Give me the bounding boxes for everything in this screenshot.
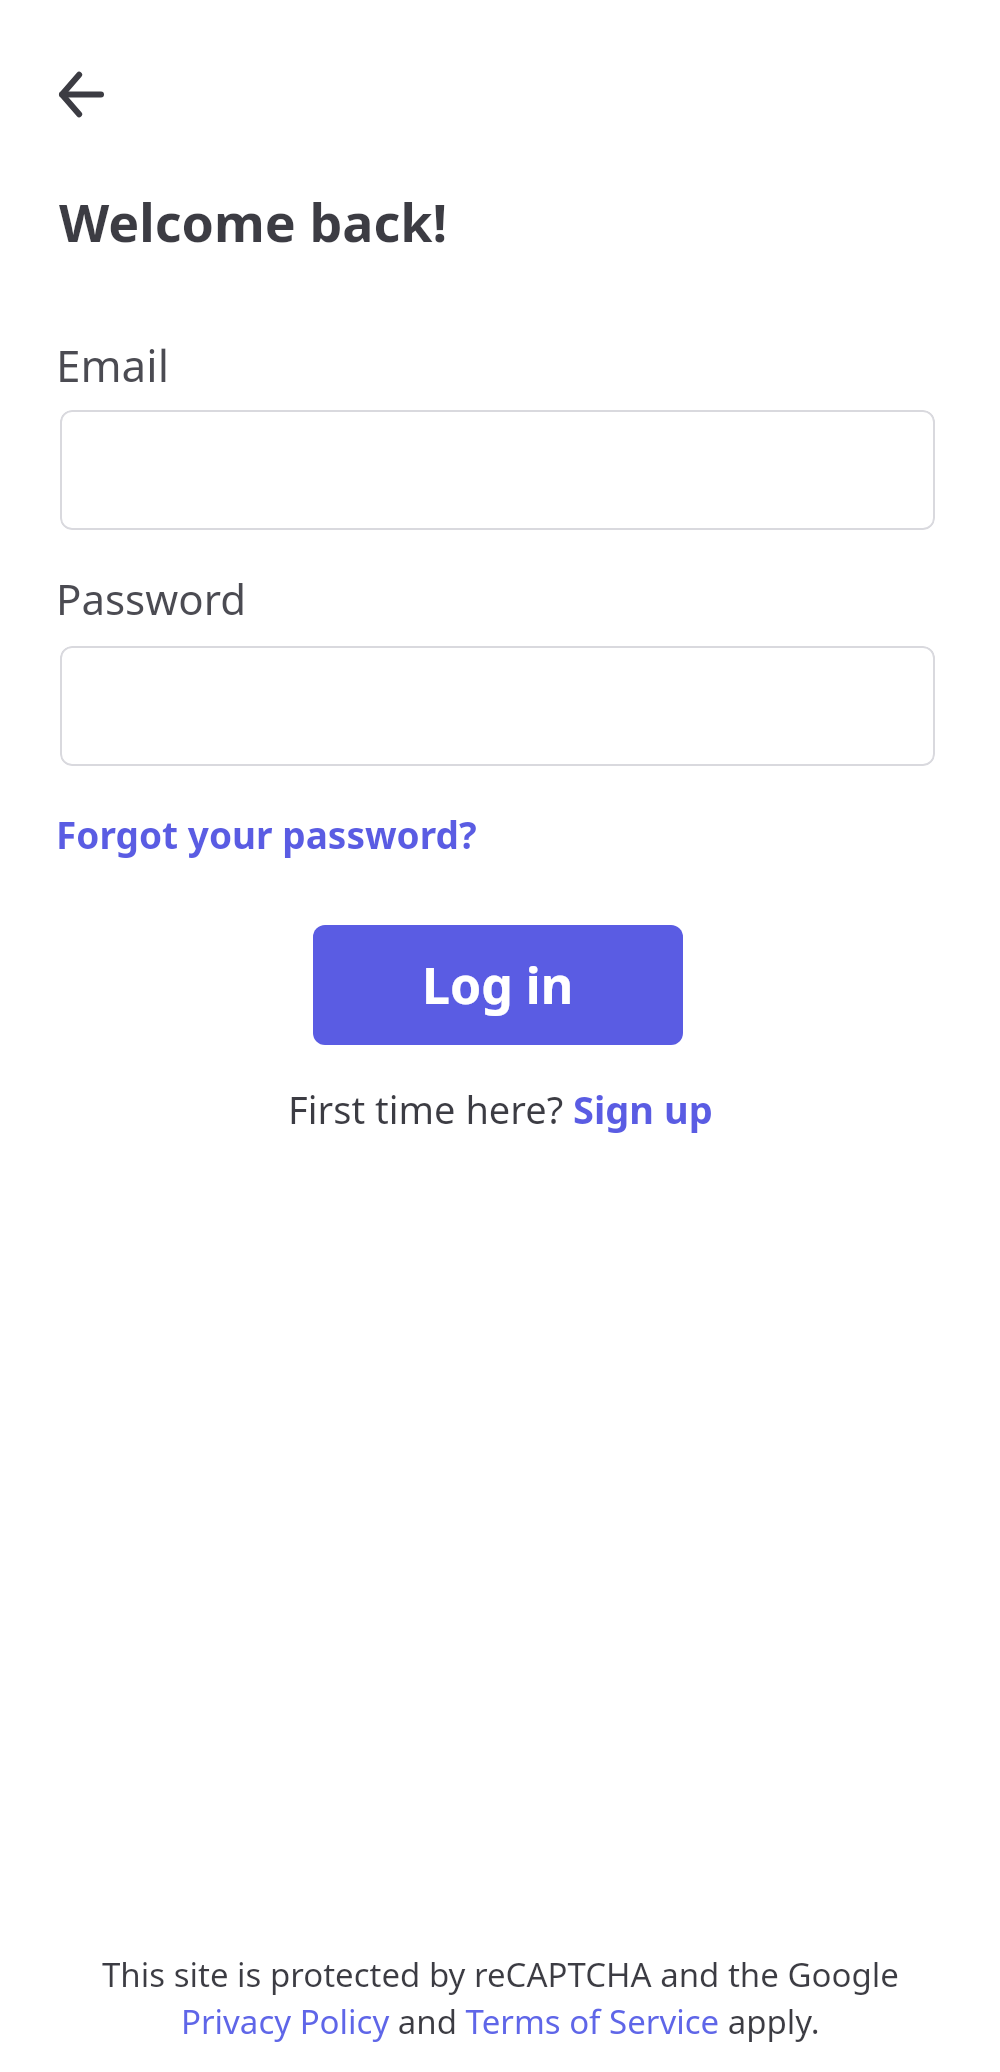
button[interactable] <box>60 410 935 530</box>
button[interactable]: First time here? Sign up <box>288 1083 713 1135</box>
staticText: Welcome back! <box>59 186 448 257</box>
button[interactable] <box>42 56 118 132</box>
staticText: This site is protected by reCAPTCHA and … <box>102 1952 899 1997</box>
button[interactable]: Forgot your password? <box>56 809 477 859</box>
button[interactable]: Privacy Policy and Terms of Service appl… <box>181 1999 820 2044</box>
button[interactable]: Log in <box>313 925 683 1045</box>
button[interactable] <box>60 646 935 766</box>
staticText: Email <box>56 335 169 395</box>
staticText: Log in <box>422 951 574 1019</box>
staticText: Password <box>56 570 246 627</box>
